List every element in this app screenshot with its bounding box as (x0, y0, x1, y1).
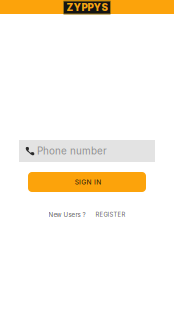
button[interactable]: SIGN IN (28, 172, 146, 192)
staticText: Phone number (37, 145, 107, 157)
button[interactable]: REGISTER (95, 211, 125, 218)
staticText: New Users ? (48, 211, 85, 218)
staticText: SIGN IN (75, 178, 101, 186)
button[interactable]: Phone number (19, 140, 155, 162)
staticText: ZYPPYS (66, 2, 107, 13)
staticText: REGISTER (95, 211, 125, 218)
